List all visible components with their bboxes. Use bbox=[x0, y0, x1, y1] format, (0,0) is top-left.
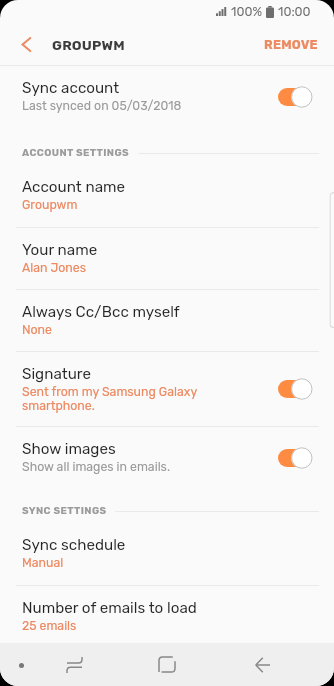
staticText: 10:00 bbox=[278, 4, 311, 19]
staticText: Show images bbox=[22, 440, 116, 458]
button[interactable]: Number of emails to load bbox=[0, 586, 334, 643]
staticText: 25 emails bbox=[22, 618, 77, 633]
staticText: Sync schedule bbox=[22, 536, 126, 554]
staticText: Sync account bbox=[22, 79, 120, 97]
button[interactable]: Home bbox=[143, 643, 191, 686]
button[interactable]: Hide navigation bar bbox=[9, 653, 33, 677]
staticText: Account name bbox=[22, 178, 126, 196]
staticText: Always Cc/Bcc myself bbox=[22, 303, 180, 321]
staticText: Number of emails to load bbox=[22, 599, 197, 617]
staticText: REMOVE bbox=[264, 37, 318, 52]
button[interactable]: Recent apps bbox=[50, 643, 98, 686]
staticText: Groupwm bbox=[22, 197, 78, 212]
staticText: Alan Jones bbox=[22, 260, 86, 275]
staticText: Your name bbox=[22, 241, 98, 259]
button[interactable]: REMOVE bbox=[248, 24, 334, 65]
staticText: Show all images in emails. bbox=[22, 459, 170, 474]
staticText: None bbox=[22, 322, 52, 337]
staticText: Last synced on 05/03/2018 bbox=[22, 98, 182, 113]
staticText: Manual bbox=[22, 555, 64, 570]
button[interactable]: Your name bbox=[0, 228, 334, 289]
staticText: 100% bbox=[231, 4, 262, 19]
staticText: SYNC SETTINGS bbox=[22, 505, 107, 517]
button[interactable]: Signature bbox=[0, 352, 334, 426]
button[interactable]: Navigate up bbox=[0, 24, 52, 65]
button[interactable]: Sync account bbox=[0, 66, 334, 128]
staticText: GROUPWM bbox=[52, 37, 125, 53]
button[interactable]: Always Cc/Bcc myself bbox=[0, 290, 334, 351]
button[interactable]: Toggle bbox=[278, 378, 313, 400]
button[interactable]: Toggle bbox=[278, 447, 313, 469]
button[interactable]: Show images bbox=[0, 427, 334, 488]
button[interactable]: Sync schedule bbox=[0, 523, 334, 585]
staticText: Sent from my Samsung Galaxy smartphone. bbox=[22, 384, 198, 414]
staticText: Signature bbox=[22, 365, 91, 383]
button[interactable]: Account name bbox=[0, 165, 334, 227]
button[interactable]: Toggle bbox=[278, 86, 313, 108]
button[interactable]: Back bbox=[238, 643, 286, 686]
staticText: ACCOUNT SETTINGS bbox=[22, 147, 130, 159]
